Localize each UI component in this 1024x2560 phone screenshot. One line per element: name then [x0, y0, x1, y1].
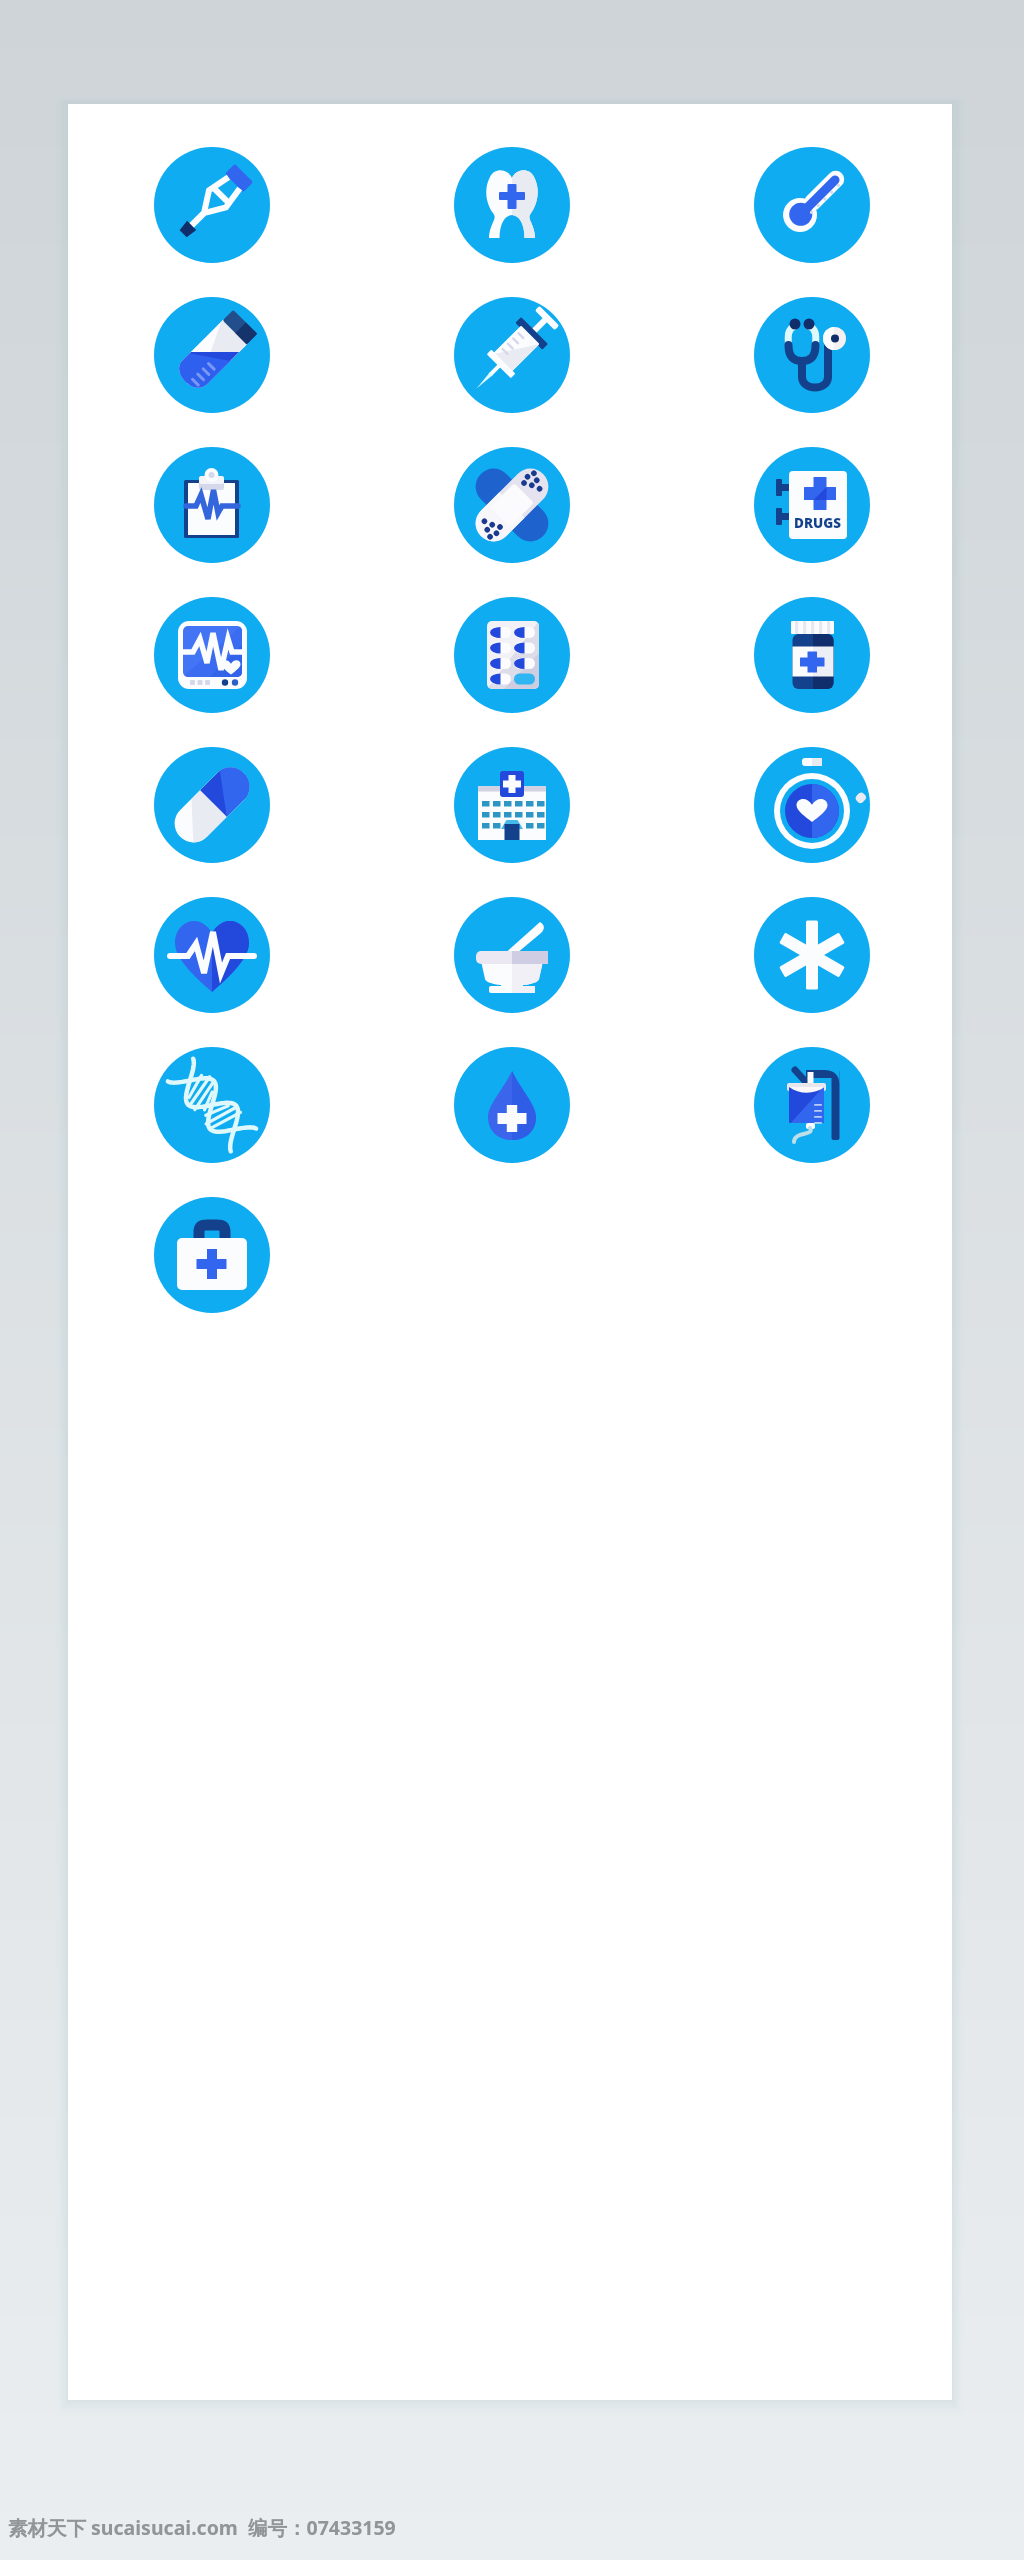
button[interactable]: Bandage [454, 447, 570, 563]
button[interactable]: Hospital [454, 747, 570, 863]
button[interactable]: Thermometer [754, 147, 870, 263]
button[interactable]: Dental care [454, 147, 570, 263]
button[interactable]: Heart rate [154, 897, 270, 1013]
button[interactable]: IV drip [754, 1047, 870, 1163]
button[interactable]: Heart monitor [154, 597, 270, 713]
button[interactable]: Mortar and pestle [454, 897, 570, 1013]
button[interactable]: Medical report [154, 447, 270, 563]
button[interactable]: Capsule [154, 747, 270, 863]
button[interactable]: Drugs book [754, 447, 870, 563]
button[interactable]: Test tube [154, 297, 270, 413]
button[interactable]: Pill bottle [754, 597, 870, 713]
button[interactable]: Stopwatch [754, 747, 870, 863]
staticText: DRUGS [794, 514, 842, 532]
button[interactable]: Medical star [754, 897, 870, 1013]
button[interactable]: Syringe [454, 297, 570, 413]
button[interactable]: Blood drop [454, 1047, 570, 1163]
button[interactable]: Stethoscope [754, 297, 870, 413]
button[interactable]: Crutch [154, 147, 270, 263]
button[interactable]: Pill pack [454, 597, 570, 713]
staticText: 素材天下 sucaisucai.com 编号：07433159 [8, 2514, 396, 2541]
button[interactable]: First aid kit [154, 1197, 270, 1313]
button[interactable]: DNA [154, 1047, 270, 1163]
